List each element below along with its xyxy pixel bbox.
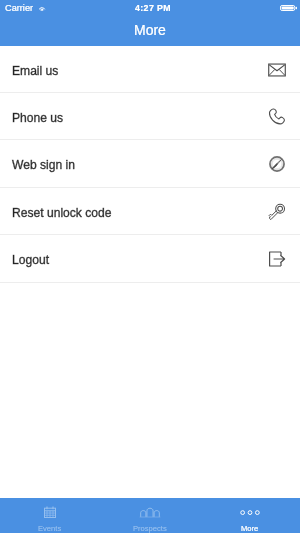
staticText: Phone us (12, 111, 64, 125)
button[interactable]: Events (0, 498, 100, 533)
button[interactable]: Web sign in (0, 140, 300, 188)
staticText: Prospects (133, 524, 167, 532)
staticText: More (134, 22, 166, 38)
staticText: Carrier (5, 3, 34, 13)
staticText: Phone us (12, 111, 64, 125)
button[interactable]: Logout (0, 235, 300, 283)
button[interactable]: Reset unlock code (0, 188, 300, 235)
staticText: Email us (12, 64, 59, 78)
staticText: Logout (12, 253, 49, 267)
staticText: Events (38, 524, 62, 532)
staticText: Web sign in (12, 158, 75, 172)
staticText: Reset unlock code (12, 206, 112, 220)
staticText: More (241, 524, 259, 532)
button[interactable]: Email us (0, 46, 300, 93)
staticText: Email us (12, 64, 59, 78)
staticText: 4:27 PM (135, 3, 172, 13)
button[interactable]: Phone us (0, 93, 300, 140)
button[interactable]: More (200, 498, 300, 533)
staticText: Reset unlock code (12, 206, 112, 220)
staticText: Web sign in (12, 158, 75, 172)
button[interactable]: Prospects (100, 498, 200, 533)
staticText: Logout (12, 253, 49, 267)
